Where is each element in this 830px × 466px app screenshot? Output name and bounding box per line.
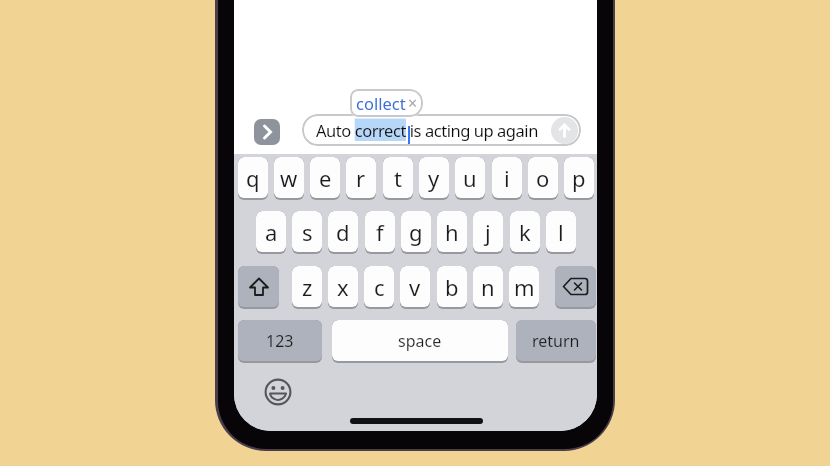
button[interactable]: m <box>509 266 539 309</box>
staticText: Auto correct is acting up again <box>316 119 538 141</box>
button[interactable]: c <box>364 266 394 309</box>
staticText: return <box>532 330 580 352</box>
staticText: u <box>463 163 477 193</box>
button[interactable]: l <box>546 211 576 254</box>
button[interactable]: q <box>238 157 268 200</box>
staticText: z <box>302 272 313 302</box>
staticText: l <box>558 217 564 247</box>
staticText: r <box>356 163 366 193</box>
button[interactable]: y <box>419 157 449 200</box>
button[interactable]: p <box>564 157 594 200</box>
button[interactable]: 123 <box>238 320 322 363</box>
button[interactable]: w <box>274 157 304 200</box>
button[interactable]: r <box>346 157 376 200</box>
staticText: j <box>485 217 491 247</box>
button[interactable]: z <box>292 266 322 309</box>
button[interactable]: o <box>528 157 558 200</box>
staticText: d <box>336 217 350 247</box>
staticText: x <box>337 272 349 302</box>
staticText: p <box>572 163 586 193</box>
button[interactable]: f <box>365 211 395 254</box>
button[interactable]: h <box>437 211 467 254</box>
staticText: 123 <box>266 330 294 352</box>
button[interactable]: k <box>510 211 540 254</box>
button[interactable]: return <box>516 320 596 363</box>
button[interactable]: n <box>473 266 503 309</box>
staticText: collect <box>356 92 406 114</box>
staticText: y <box>428 163 440 193</box>
staticText: n <box>481 272 495 302</box>
staticText: v <box>409 272 421 302</box>
button[interactable]: collect <box>350 89 423 117</box>
staticText: s <box>302 217 313 247</box>
staticText: b <box>445 272 459 302</box>
staticText: c <box>374 272 385 302</box>
staticText: e <box>319 163 332 193</box>
button[interactable] <box>254 119 280 145</box>
button[interactable]: Auto correct is acting up again <box>302 114 581 146</box>
button[interactable]: a <box>256 211 286 254</box>
staticText: m <box>514 272 535 302</box>
button[interactable] <box>238 266 279 309</box>
staticText: f <box>376 217 384 247</box>
staticText: g <box>409 217 423 247</box>
button[interactable]: x <box>328 266 358 309</box>
button[interactable] <box>551 117 578 144</box>
button[interactable]: e <box>310 157 340 200</box>
button[interactable]: d <box>328 211 358 254</box>
staticText: a <box>265 217 278 247</box>
button[interactable] <box>264 378 292 406</box>
staticText: t <box>394 163 402 193</box>
button[interactable]: i <box>492 157 522 200</box>
staticText: o <box>536 163 550 193</box>
staticText: × <box>408 92 418 114</box>
staticText: w <box>280 163 298 193</box>
button[interactable]: u <box>455 157 485 200</box>
button[interactable]: s <box>292 211 322 254</box>
staticText: i <box>504 163 510 193</box>
button[interactable]: j <box>473 211 503 254</box>
staticText: q <box>246 163 260 193</box>
staticText: k <box>519 217 531 247</box>
staticText: space <box>398 330 442 352</box>
button[interactable]: v <box>400 266 430 309</box>
staticText: h <box>445 217 459 247</box>
button[interactable]: t <box>383 157 413 200</box>
button[interactable]: g <box>401 211 431 254</box>
button[interactable]: b <box>437 266 467 309</box>
button[interactable] <box>555 266 596 309</box>
button[interactable]: space <box>332 320 508 363</box>
